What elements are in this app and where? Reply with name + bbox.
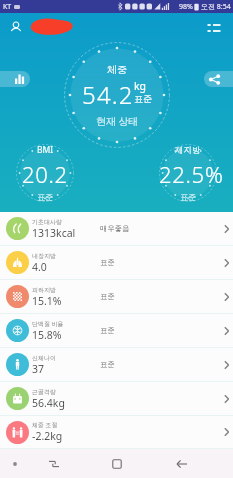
staticText: 1313kcal — [32, 226, 76, 240]
staticText: 표준 — [37, 192, 53, 202]
staticText: 15.1% — [32, 294, 62, 308]
staticText: BMI — [37, 144, 54, 156]
staticText: 근골격량 — [32, 388, 56, 396]
staticText: 22.5 — [159, 159, 205, 189]
button[interactable]: 기초대사량 — [0, 212, 233, 245]
staticText: 체중 조절 — [32, 421, 58, 429]
staticText: 15.8% — [32, 328, 62, 342]
staticText: 표준 — [134, 93, 152, 104]
staticText: 표준 — [100, 292, 115, 301]
staticText: 표준 — [180, 192, 196, 202]
staticText: 내장지방 — [32, 252, 56, 260]
button[interactable]: Recents — [36, 449, 72, 478]
staticText: 단백질 비율 — [32, 320, 64, 328]
staticText: 표준 — [100, 360, 115, 369]
staticText: % — [205, 159, 217, 189]
staticText: 매우좋음 — [100, 224, 130, 233]
staticText: 56.4kg — [32, 396, 65, 410]
staticText: 오전 8:54 — [201, 2, 231, 12]
button[interactable]: 근골격량 — [0, 382, 233, 415]
button[interactable]: Back — [164, 449, 200, 478]
button[interactable]: Home — [99, 449, 135, 478]
button[interactable]: 체중 조절 — [0, 416, 233, 448]
staticText: 표준 — [100, 258, 115, 267]
button[interactable]: Share — [204, 71, 233, 87]
staticText: 기초대사량 — [32, 218, 62, 226]
button[interactable]: 체중 — [82, 63, 152, 128]
staticText: 피하지방 — [32, 286, 56, 294]
button[interactable]: BMI — [22, 144, 68, 202]
button[interactable]: 피하지방 — [0, 280, 233, 313]
button[interactable]: Menu — [205, 18, 225, 38]
button[interactable]: 제지방 — [159, 145, 217, 202]
staticText: 54.2 — [82, 78, 134, 111]
staticText: kg — [134, 79, 147, 93]
staticText: 제지방 — [175, 145, 201, 156]
staticText: 체중 — [107, 63, 127, 76]
staticText: 4.0 — [32, 260, 47, 274]
button[interactable]: 내장지방 — [0, 246, 233, 279]
staticText: 37 — [32, 362, 45, 376]
button[interactable]: 신체나이 — [0, 348, 233, 381]
button[interactable]: Assistant — [5, 454, 25, 474]
staticText: 20.2 — [22, 159, 68, 189]
staticText: 신체나이 — [32, 354, 56, 362]
staticText: 98% — [179, 2, 193, 12]
staticText: 현재 상태 — [96, 114, 139, 128]
button[interactable]: Profile — [6, 18, 26, 38]
button[interactable]: 단백질 비율 — [0, 314, 233, 347]
button[interactable]: Chart — [0, 71, 30, 87]
staticText: KT — [3, 2, 12, 12]
staticText: -2.2kg — [32, 429, 63, 443]
staticText: 표준 — [100, 326, 115, 335]
